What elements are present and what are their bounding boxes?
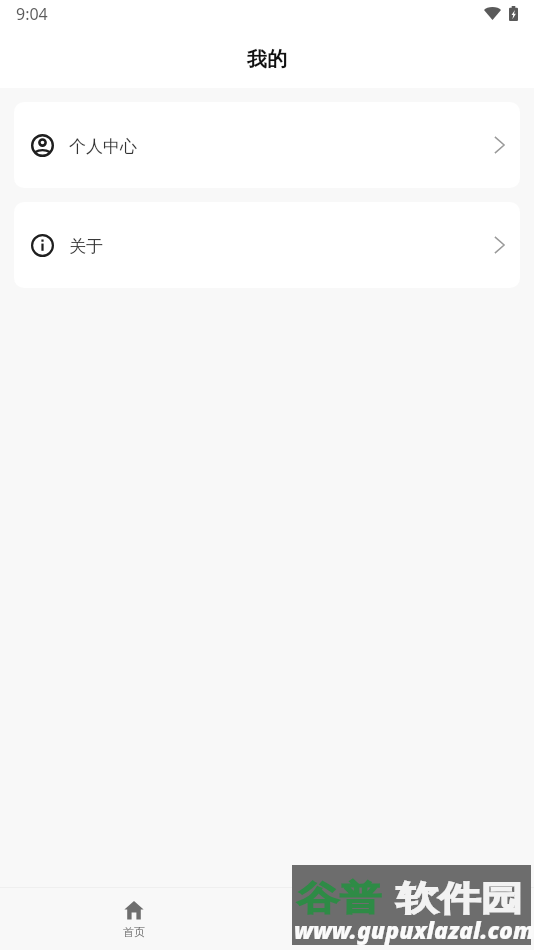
staticText: 软件园 — [396, 877, 522, 920]
button[interactable]: Profile — [267, 900, 534, 939]
button[interactable]: Account — [14, 102, 520, 188]
staticText: 关于 — [69, 236, 103, 257]
staticText: 谷普 — [297, 877, 381, 920]
other: About — [31, 234, 54, 257]
other: Account — [31, 134, 54, 157]
staticText: www.gupuxlazal.com — [294, 914, 533, 945]
button[interactable]: Home — [0, 900, 267, 939]
button[interactable]: About — [14, 202, 520, 288]
other: Battery charging — [509, 6, 518, 21]
staticText: 我的 — [247, 47, 287, 72]
other: Home — [124, 900, 144, 920]
staticText: 9:04 — [16, 3, 48, 25]
other: Wi-Fi — [484, 6, 501, 20]
staticText: 首页 — [123, 925, 145, 939]
other: Profile — [391, 900, 411, 920]
staticText: 我的 — [390, 925, 412, 939]
staticText: 个人中心 — [69, 136, 137, 157]
